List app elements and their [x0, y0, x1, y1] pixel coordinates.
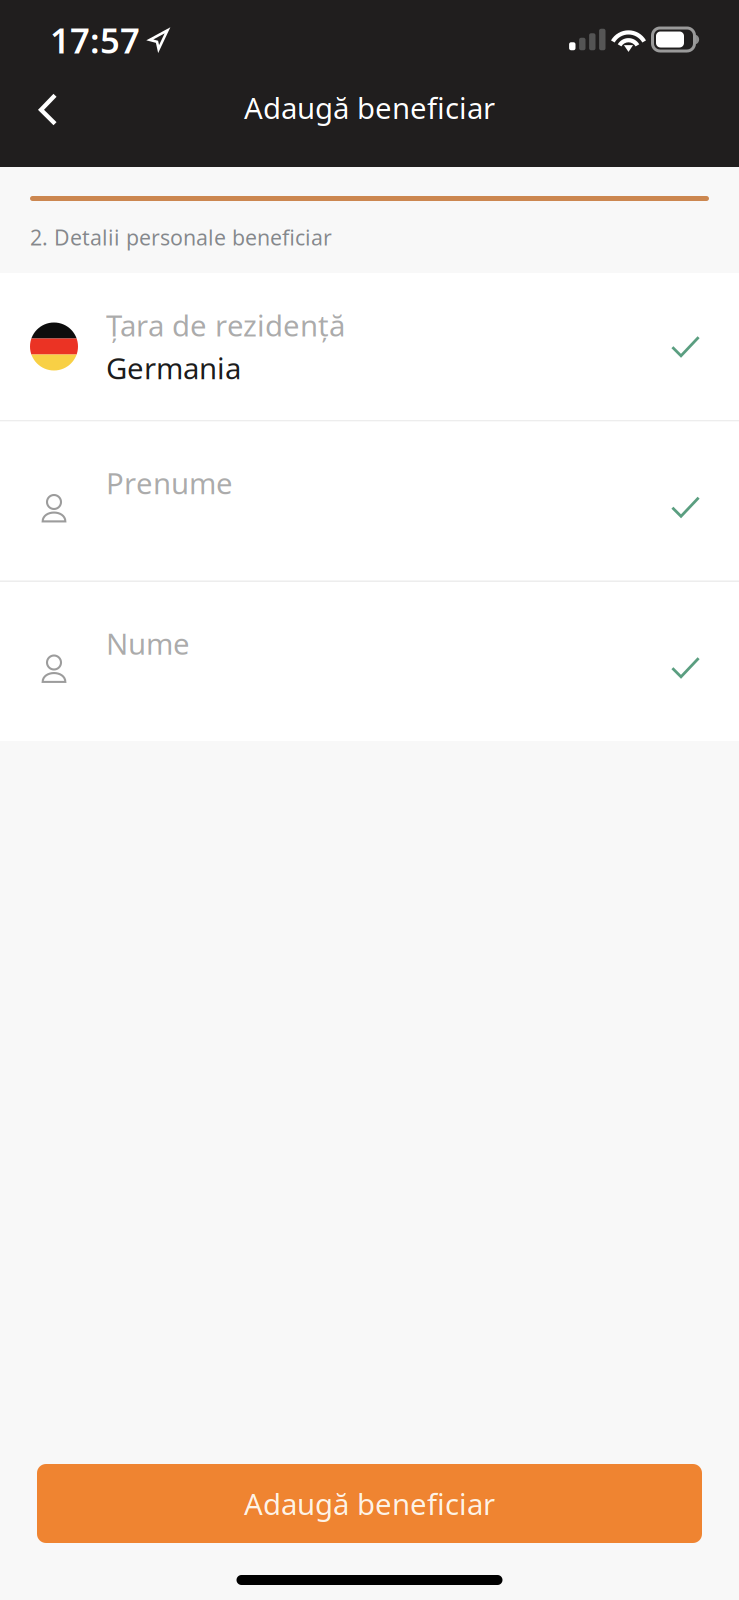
button[interactable]: Nume [0, 582, 739, 741]
button[interactable]: Adaugă beneficiar [37, 1464, 702, 1543]
staticText: Adaugă beneficiar [244, 1484, 495, 1523]
staticText: Nume [106, 624, 190, 663]
staticText: 2. Detalii personale beneficiar [30, 223, 332, 251]
staticText: Prenume [106, 463, 233, 502]
button[interactable]: Prenume [0, 421, 739, 580]
button[interactable]: Țara de rezidență [0, 273, 739, 420]
staticText: Germania [106, 348, 241, 387]
staticText: 17:57 [50, 17, 140, 63]
button[interactable]: Back [19, 79, 77, 139]
staticText: Adaugă beneficiar [244, 88, 495, 127]
staticText: Țara de rezidență [106, 305, 345, 344]
